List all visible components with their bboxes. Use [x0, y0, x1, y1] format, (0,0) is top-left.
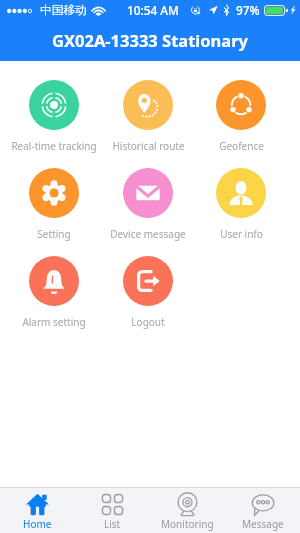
button[interactable]: Setting: [7, 168, 101, 241]
staticText: Setting: [37, 227, 71, 241]
button[interactable]: Real-time tracking: [7, 80, 101, 153]
staticText: Geofence: [219, 139, 264, 153]
button[interactable]: Monitoring: [150, 488, 225, 533]
button[interactable]: Device message: [101, 168, 195, 241]
button[interactable]: List: [75, 488, 150, 533]
button[interactable]: Geofence: [194, 80, 288, 153]
staticText: 97%: [236, 2, 260, 18]
staticText: Device message: [110, 227, 186, 241]
button[interactable]: Home: [0, 488, 75, 533]
staticText: Logout: [131, 315, 165, 329]
staticText: List: [104, 517, 121, 531]
staticText: 中国移动: [40, 3, 87, 18]
button[interactable]: Historical route: [101, 80, 195, 153]
staticText: Message: [242, 517, 284, 531]
staticText: Historical route: [112, 139, 185, 153]
staticText: User info: [220, 227, 263, 241]
button[interactable]: Logout: [101, 256, 195, 329]
button[interactable]: Message: [225, 488, 300, 533]
button[interactable]: User info: [194, 168, 288, 241]
staticText: Real-time tracking: [11, 139, 97, 153]
staticText: 10:54 AM: [127, 2, 179, 18]
staticText: GX02A-13333 Stationary: [52, 29, 249, 51]
staticText: Monitoring: [161, 517, 214, 531]
staticText: Home: [23, 517, 52, 531]
staticText: Alarm setting: [22, 315, 86, 329]
button[interactable]: Alarm setting: [7, 256, 101, 329]
